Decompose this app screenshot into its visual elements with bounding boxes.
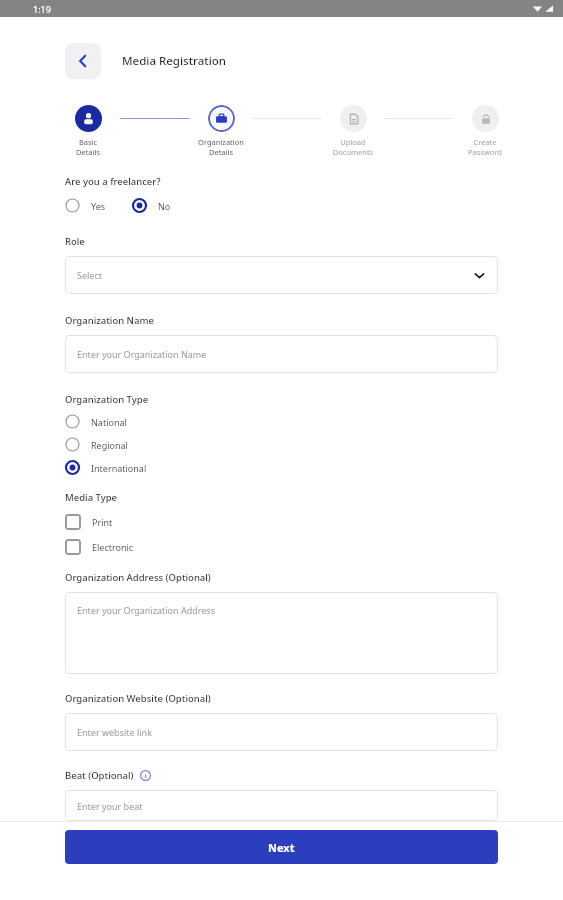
staticText: Yes xyxy=(91,200,106,212)
staticText: Organization Address (Optional) xyxy=(65,571,211,584)
staticText: Documents xyxy=(325,147,381,157)
button[interactable]: Yes xyxy=(65,198,132,213)
button[interactable]: Enter your beat xyxy=(65,790,498,821)
staticText: Organization Name xyxy=(65,314,154,327)
staticText: Password xyxy=(457,147,513,157)
staticText: Next xyxy=(268,840,295,855)
staticText: Electronic xyxy=(92,541,134,553)
button[interactable]: Enter your Organization Name xyxy=(65,335,498,373)
staticText: No xyxy=(158,200,171,212)
staticText: Organization Type xyxy=(65,393,149,406)
button[interactable]: Enter website link xyxy=(65,713,498,751)
button[interactable]: Print xyxy=(65,514,498,530)
staticText: Organization xyxy=(193,137,249,147)
button[interactable]: Info xyxy=(140,770,151,781)
button[interactable]: Upload xyxy=(325,105,381,157)
button[interactable]: Select xyxy=(65,256,498,294)
button[interactable]: Organization xyxy=(193,105,249,157)
button[interactable]: National xyxy=(65,414,498,429)
staticText: Organization Website (Optional) xyxy=(65,692,211,705)
staticText: Enter your Organization Name xyxy=(77,348,207,360)
staticText: Beat (Optional) xyxy=(65,769,134,782)
button[interactable]: Create xyxy=(457,105,513,157)
staticText: Role xyxy=(65,235,85,248)
staticText: Enter your beat xyxy=(77,800,143,812)
button[interactable]: Regional xyxy=(65,437,498,452)
staticText: Upload xyxy=(325,137,381,147)
staticText: Media Registration xyxy=(122,53,227,69)
button[interactable]: Electronic xyxy=(65,539,498,555)
button[interactable]: No xyxy=(132,198,171,213)
staticText: Basic xyxy=(60,137,116,147)
staticText: Create xyxy=(457,137,513,147)
staticText: National xyxy=(91,416,127,428)
staticText: Regional xyxy=(91,439,128,451)
button[interactable]: Back xyxy=(65,43,101,79)
staticText: Enter your Organization Address xyxy=(77,604,215,616)
button[interactable]: Enter your Organization Address xyxy=(65,592,498,674)
button[interactable]: Next xyxy=(65,830,498,864)
staticText: 1:19 xyxy=(33,3,51,15)
staticText: Print xyxy=(92,516,113,528)
staticText: Media Type xyxy=(65,491,118,504)
button[interactable]: International xyxy=(65,460,498,475)
button[interactable]: Basic xyxy=(60,105,116,157)
staticText: Details xyxy=(60,147,116,157)
staticText: Details xyxy=(193,147,249,157)
staticText: International xyxy=(91,462,147,474)
staticText: Enter website link xyxy=(77,726,152,738)
staticText: Are you a freelancer? xyxy=(65,175,161,188)
staticText: Select xyxy=(77,269,102,281)
